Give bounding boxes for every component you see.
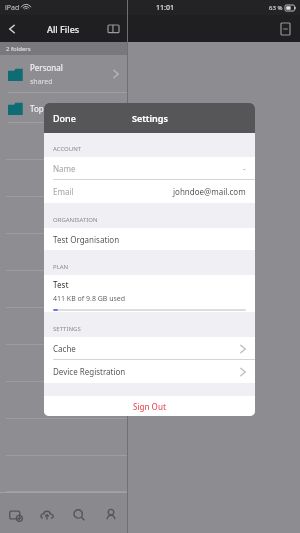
button[interactable]: Document [281, 23, 290, 35]
staticText: Personal [30, 62, 63, 73]
staticText: Test Organisation [53, 234, 120, 245]
staticText: 11:01 [156, 3, 174, 13]
staticText: shared [30, 77, 53, 87]
staticText: SETTINGS [53, 325, 81, 333]
staticText: - [243, 163, 246, 174]
button[interactable]: Name [44, 157, 255, 180]
staticText: 411 KB of 9.8 GB used [53, 294, 126, 304]
staticText: Top Secret [30, 103, 70, 114]
button[interactable]: Email [44, 180, 255, 203]
staticText: 2 folders [6, 45, 31, 53]
staticText: johndoe@mail.com [173, 186, 246, 197]
button[interactable]: Account [95, 496, 127, 533]
button[interactable]: Done [44, 106, 85, 130]
button[interactable]: Test [44, 275, 255, 312]
button[interactable]: Device Registration [44, 360, 255, 383]
button[interactable]: Cache [44, 337, 255, 360]
staticText: All Files [47, 23, 80, 35]
button[interactable]: New Folder [0, 496, 31, 533]
staticText: Done [53, 112, 76, 124]
staticText: Sign Out [133, 401, 166, 412]
button[interactable]: Top Secret [0, 93, 127, 123]
button[interactable]: Upload [31, 496, 63, 533]
button[interactable]: Folder [108, 23, 119, 34]
button[interactable]: Test Organisation [44, 228, 255, 250]
staticText: PLAN [53, 263, 69, 271]
button[interactable]: Search [63, 496, 95, 533]
staticText: iPad [5, 3, 20, 13]
staticText: Email [53, 186, 173, 197]
staticText: Cache [53, 343, 238, 354]
button[interactable]: Sign Out [44, 396, 255, 416]
staticText: ACCOUNT [53, 145, 82, 153]
button[interactable]: Personal [0, 55, 127, 93]
staticText: ORGANISATION [53, 216, 98, 224]
staticText: Settings [132, 112, 168, 124]
staticText: Device Registration [53, 366, 238, 377]
staticText: Test [53, 279, 69, 290]
staticText: Name [53, 163, 243, 174]
staticText: 63 % [269, 4, 283, 12]
button[interactable]: Back [6, 23, 18, 35]
